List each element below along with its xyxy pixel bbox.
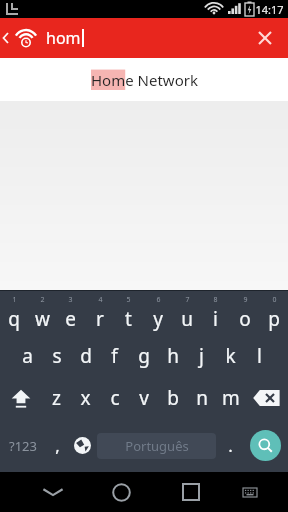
button[interactable]: a	[13, 335, 42, 377]
staticText: c	[110, 385, 120, 411]
staticText: ,	[55, 434, 60, 457]
staticText: g	[138, 343, 150, 369]
button[interactable]: ,	[45, 419, 70, 472]
button[interactable]: Shift	[0, 377, 42, 419]
button[interactable]: l	[245, 335, 274, 377]
button[interactable]: Clear search	[242, 18, 288, 58]
button[interactable]: 9	[230, 291, 259, 335]
staticText: 7	[185, 295, 190, 305]
staticText: ?123	[9, 437, 37, 455]
staticText: l	[257, 343, 262, 369]
staticText: 0	[272, 295, 277, 305]
button[interactable]: Home	[87, 472, 156, 512]
button[interactable]: Switch keyboard	[225, 472, 274, 512]
staticText: b	[167, 385, 179, 411]
button[interactable]: 4	[85, 291, 114, 335]
staticText: t	[125, 306, 132, 332]
staticText: u	[181, 306, 193, 332]
staticText: v	[139, 385, 149, 411]
staticText: r	[96, 306, 104, 332]
button[interactable]: 2	[28, 291, 56, 335]
staticText: x	[80, 385, 91, 411]
staticText: e	[65, 306, 76, 332]
staticText: 3	[68, 295, 73, 305]
staticText: 5	[126, 295, 131, 305]
staticText: i	[213, 306, 218, 332]
staticText: f	[111, 343, 118, 369]
button[interactable]: b	[158, 377, 187, 419]
staticText: 1	[12, 295, 17, 305]
staticText: 6	[156, 295, 161, 305]
staticText: Home Network	[91, 70, 198, 90]
staticText: .	[228, 434, 233, 457]
button[interactable]: Change language	[70, 419, 95, 472]
staticText: 2	[40, 295, 45, 305]
button[interactable]: 6	[143, 291, 172, 335]
button[interactable]: 1	[0, 291, 28, 335]
button[interactable]: z	[42, 377, 71, 419]
staticText: m	[222, 385, 240, 411]
button[interactable]: .	[218, 419, 243, 472]
staticText: a	[22, 343, 33, 369]
staticText: p	[268, 306, 280, 332]
button[interactable]: f	[100, 335, 129, 377]
staticText: d	[80, 343, 92, 369]
button[interactable]: 7	[172, 291, 201, 335]
button[interactable]: Search	[243, 419, 288, 472]
staticText: n	[196, 385, 208, 411]
staticText: Português	[125, 437, 189, 455]
button[interactable]: n	[187, 377, 216, 419]
button[interactable]: 8	[201, 291, 230, 335]
staticText: 4	[98, 295, 103, 305]
button[interactable]: c	[100, 377, 129, 419]
button[interactable]: x	[71, 377, 100, 419]
button[interactable]: hom	[46, 18, 242, 58]
button[interactable]: ?123	[0, 419, 45, 472]
staticText: j	[199, 343, 204, 369]
staticText: q	[8, 306, 20, 332]
staticText: 14:17	[255, 2, 284, 17]
button[interactable]: Back	[18, 472, 87, 512]
staticText: k	[225, 343, 236, 369]
button[interactable]: s	[42, 335, 71, 377]
staticText: hom	[46, 27, 81, 49]
button[interactable]: 0	[259, 291, 288, 335]
button[interactable]: 5	[114, 291, 143, 335]
button[interactable]: Backspace	[245, 377, 288, 419]
staticText: 9	[243, 295, 248, 305]
button[interactable]: Recent apps	[156, 472, 225, 512]
button[interactable]: k	[216, 335, 245, 377]
staticText: o	[239, 306, 251, 332]
staticText: h	[167, 343, 179, 369]
button[interactable]: v	[129, 377, 158, 419]
button[interactable]: g	[129, 335, 158, 377]
staticText: s	[52, 343, 62, 369]
staticText: y	[153, 306, 163, 332]
button[interactable]: m	[216, 377, 245, 419]
staticText: w	[35, 306, 50, 332]
staticText: 8	[213, 295, 218, 305]
button[interactable]: j	[187, 335, 216, 377]
button[interactable]: d	[71, 335, 100, 377]
button[interactable]: h	[158, 335, 187, 377]
button[interactable]: Home Network	[0, 58, 288, 101]
button[interactable]: Navigate up, Wi-Fi history	[0, 18, 46, 58]
button[interactable]: Português	[97, 433, 216, 459]
button[interactable]: 3	[56, 291, 85, 335]
staticText: z	[52, 385, 61, 411]
